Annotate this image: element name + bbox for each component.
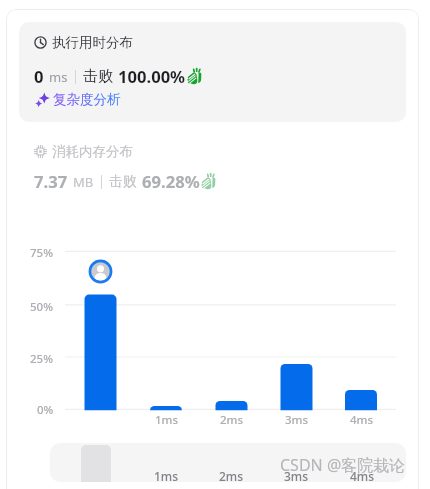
button[interactable]: 复杂度分析 (35, 91, 121, 108)
staticText: MB (73, 173, 94, 191)
staticText: 4ms (350, 412, 374, 428)
staticText: 0 (34, 65, 44, 88)
staticText: 3ms (285, 412, 309, 428)
staticText: 消耗内存分布 (52, 143, 133, 160)
staticText: 0% (37, 402, 54, 418)
other: Runtime (34, 36, 47, 49)
staticText: 25% (30, 351, 53, 367)
staticText: 75% (30, 245, 53, 261)
staticText: 7.37 (34, 170, 68, 193)
staticText: 复杂度分析 (53, 91, 121, 108)
button[interactable]: Runtime (19, 22, 406, 122)
staticText: 3ms (284, 468, 309, 484)
staticText: 2ms (220, 412, 244, 428)
staticText: CSDN @客院栽论 (280, 454, 406, 476)
staticText: 2ms (219, 468, 244, 484)
staticText: ms (49, 68, 68, 86)
staticText: 击败 (83, 67, 113, 86)
other: Memory (34, 145, 47, 158)
staticText: 69.28% (142, 170, 200, 193)
staticText: 击败 (109, 173, 137, 191)
staticText: 50% (30, 299, 53, 315)
staticText: 100.00% (118, 65, 186, 88)
staticText: 1ms (154, 468, 179, 484)
staticText: 4ms (350, 468, 375, 484)
staticText: 1ms (155, 412, 179, 428)
staticText: 执行用时分布 (52, 34, 133, 51)
